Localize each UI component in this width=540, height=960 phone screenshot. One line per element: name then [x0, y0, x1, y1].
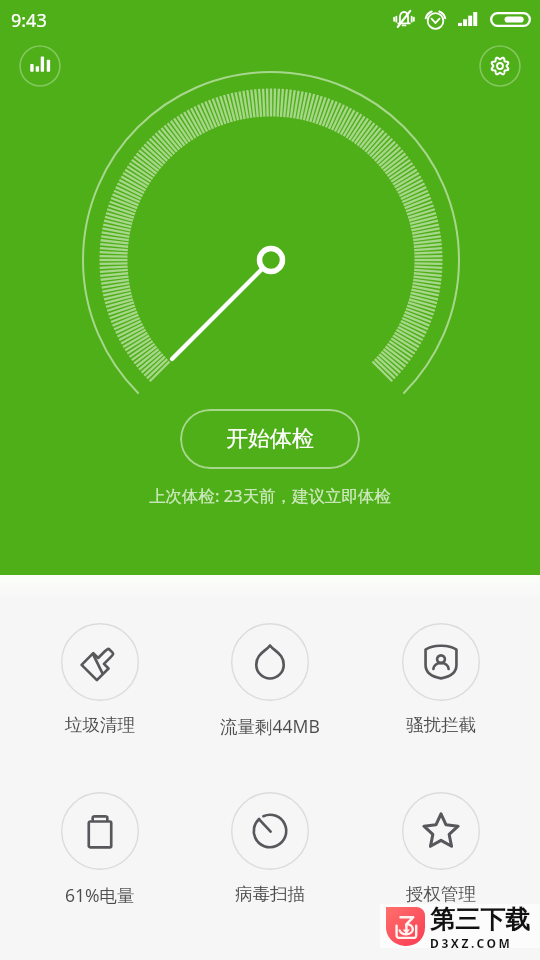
staticText: 上次体检: 23天前，建议立即体检: [0, 484, 540, 507]
button[interactable]: 流量剩44MB: [210, 612, 330, 736]
staticText: 流量剩44MB: [220, 714, 320, 736]
staticText: 垃圾清理: [65, 714, 135, 736]
staticText: 第三下载: [430, 904, 530, 935]
button[interactable]: 骚扰拦截: [381, 612, 501, 736]
staticText: 开始体检: [226, 425, 314, 453]
button[interactable]: 61%电量: [40, 781, 160, 905]
button[interactable]: 病毒扫描: [210, 781, 330, 905]
staticText: 9:43: [11, 8, 47, 33]
staticText: 61%电量: [65, 883, 135, 905]
staticText: D3XZ.COM: [430, 935, 513, 948]
button[interactable]: 垃圾清理: [40, 612, 160, 736]
staticText: 授权管理: [406, 883, 476, 905]
button[interactable]: 授权管理: [381, 781, 501, 905]
button[interactable]: 使用统计: [19, 45, 61, 87]
button[interactable]: 设置: [479, 45, 521, 87]
staticText: 骚扰拦截: [406, 714, 476, 736]
staticText: 病毒扫描: [235, 883, 305, 905]
button[interactable]: 开始体检: [180, 409, 360, 469]
